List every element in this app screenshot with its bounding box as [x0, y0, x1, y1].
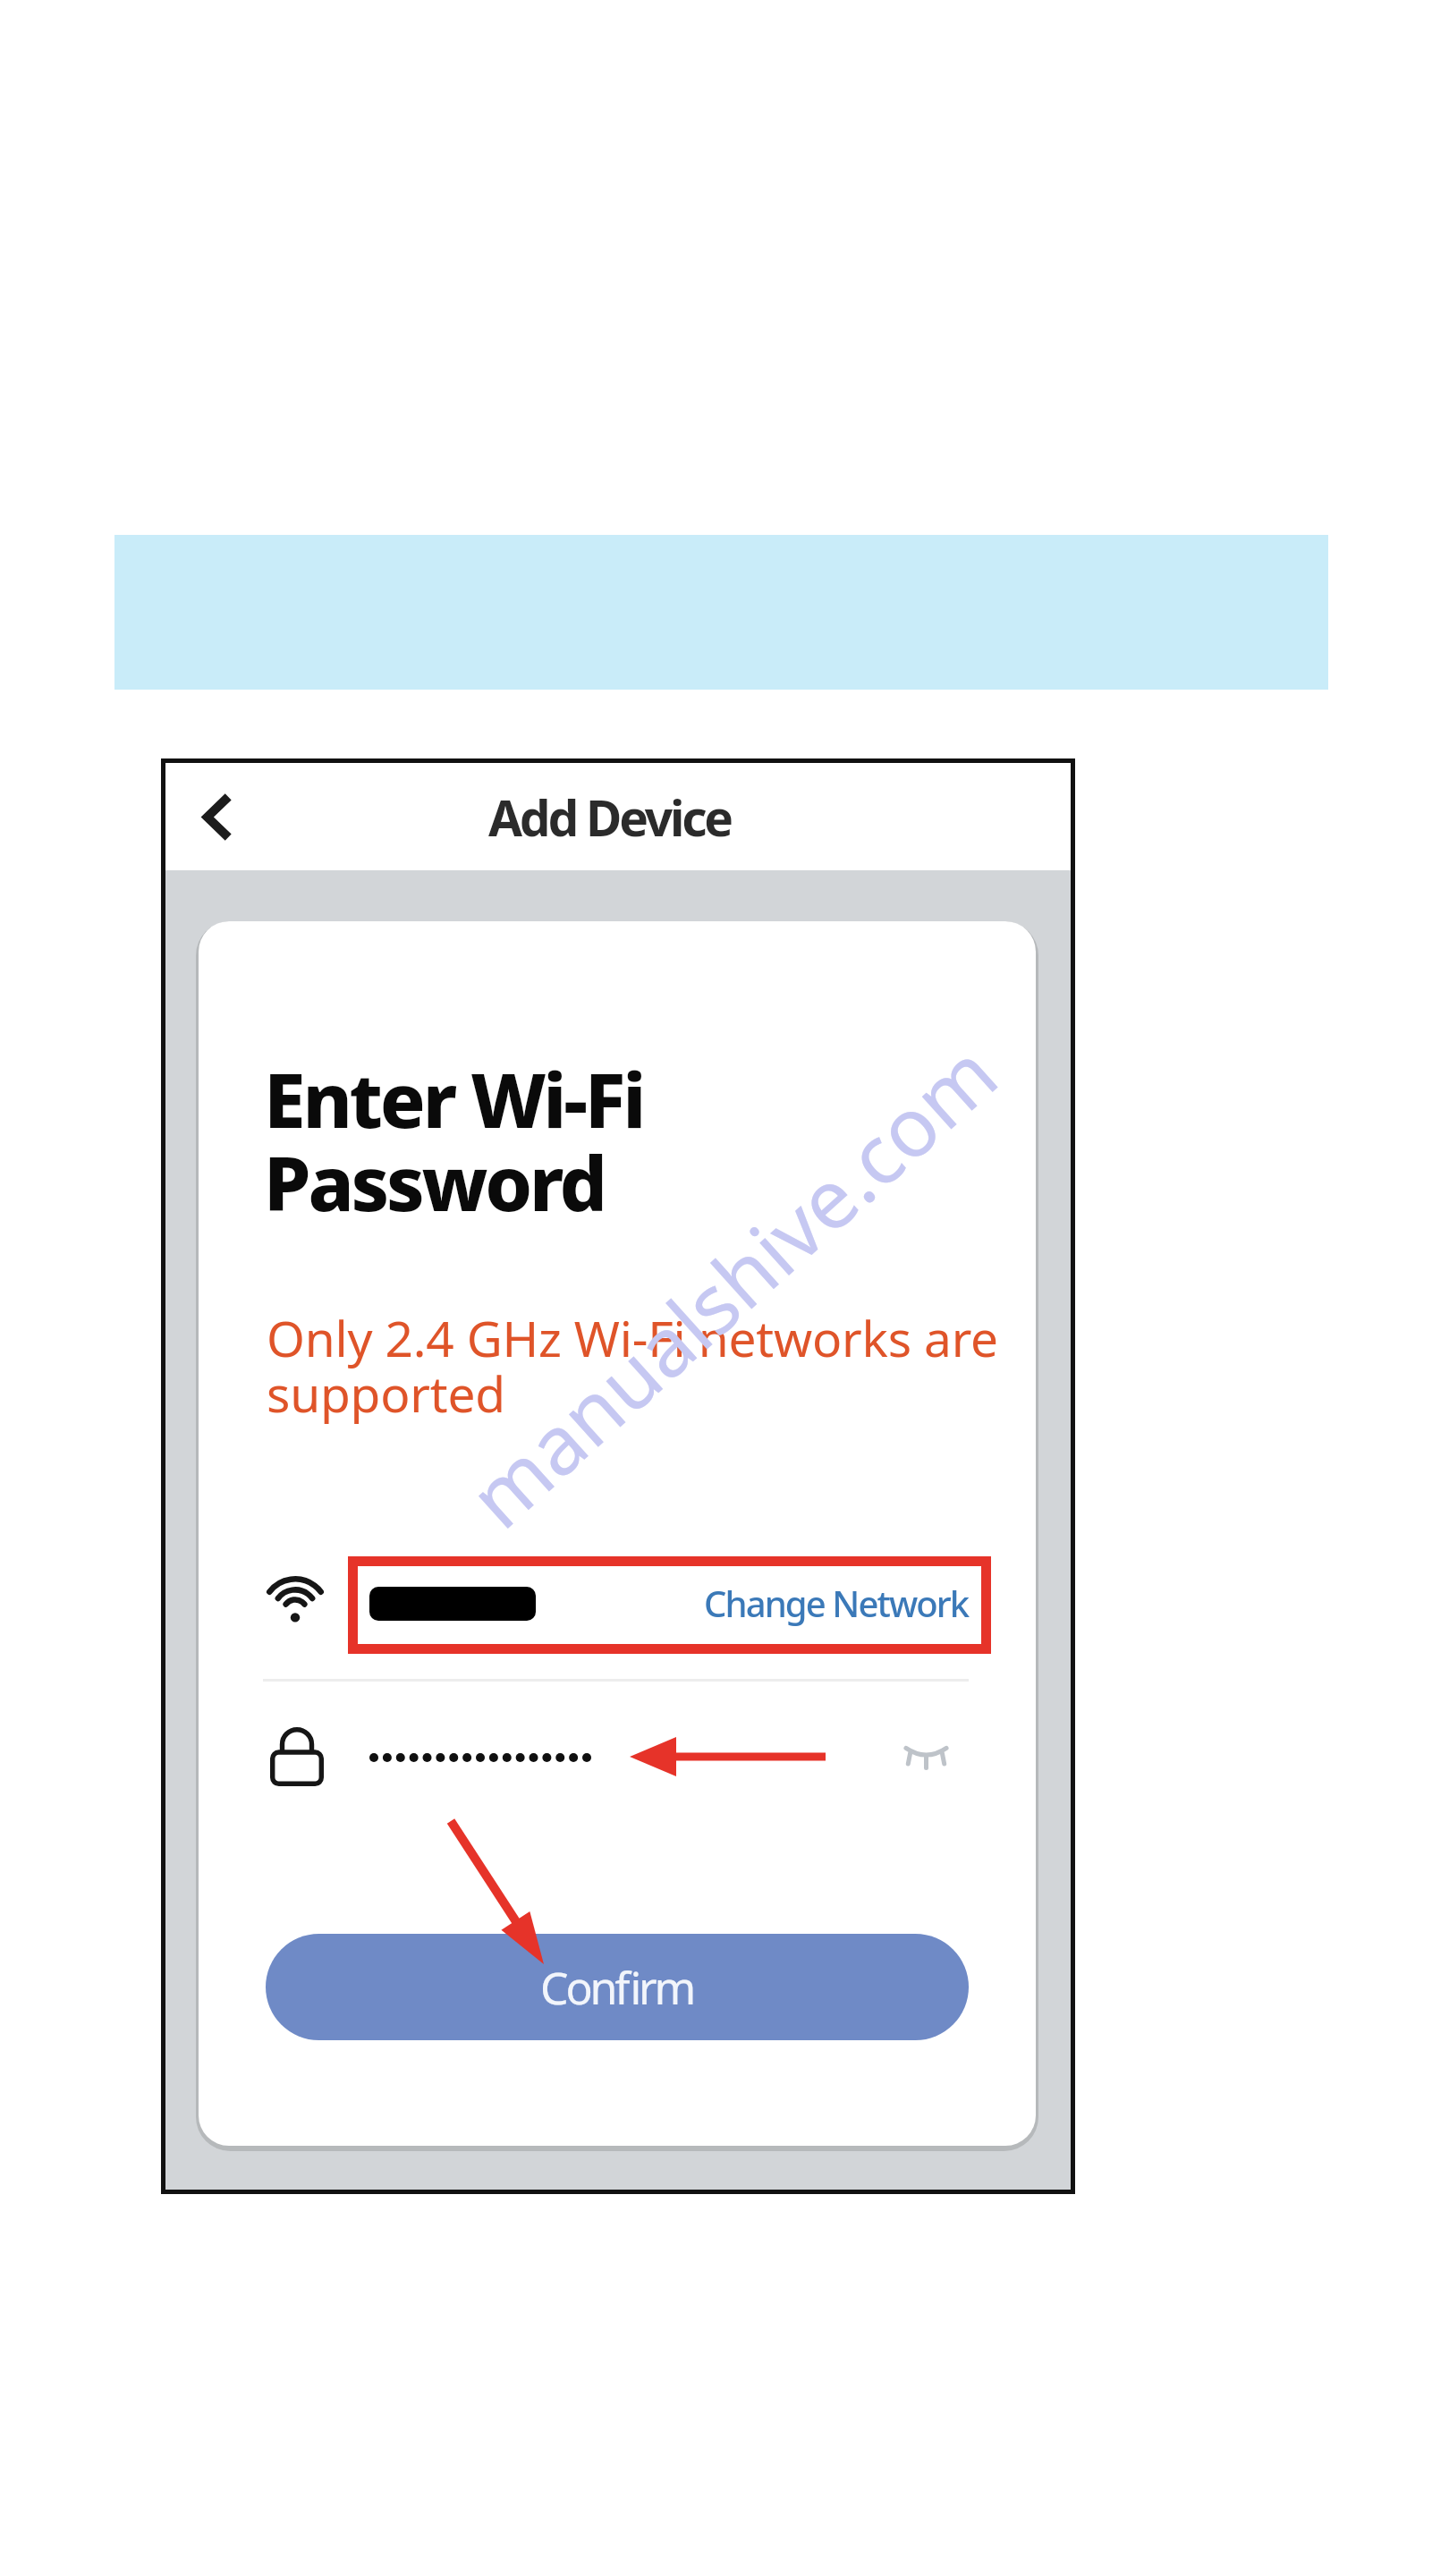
- button[interactable]: Wi-Fi: [252, 1555, 338, 1641]
- staticText: Only 2.4 GHz Wi-Fi networks are supporte…: [267, 1304, 998, 1428]
- staticText: Change Network: [704, 1579, 969, 1627]
- staticText: manualshive.com: [445, 1018, 1019, 1551]
- staticText: Add Device: [488, 784, 731, 851]
- staticText: Enter Wi-Fi Password: [264, 1047, 644, 1233]
- button[interactable]: Password: [254, 1714, 340, 1800]
- button[interactable]: Change Network: [656, 1572, 969, 1634]
- button[interactable]: Back: [177, 777, 256, 856]
- button[interactable]: Show password: [890, 1719, 962, 1791]
- staticText: Confirm: [540, 1957, 694, 2018]
- button[interactable]: Confirm: [266, 1934, 969, 2040]
